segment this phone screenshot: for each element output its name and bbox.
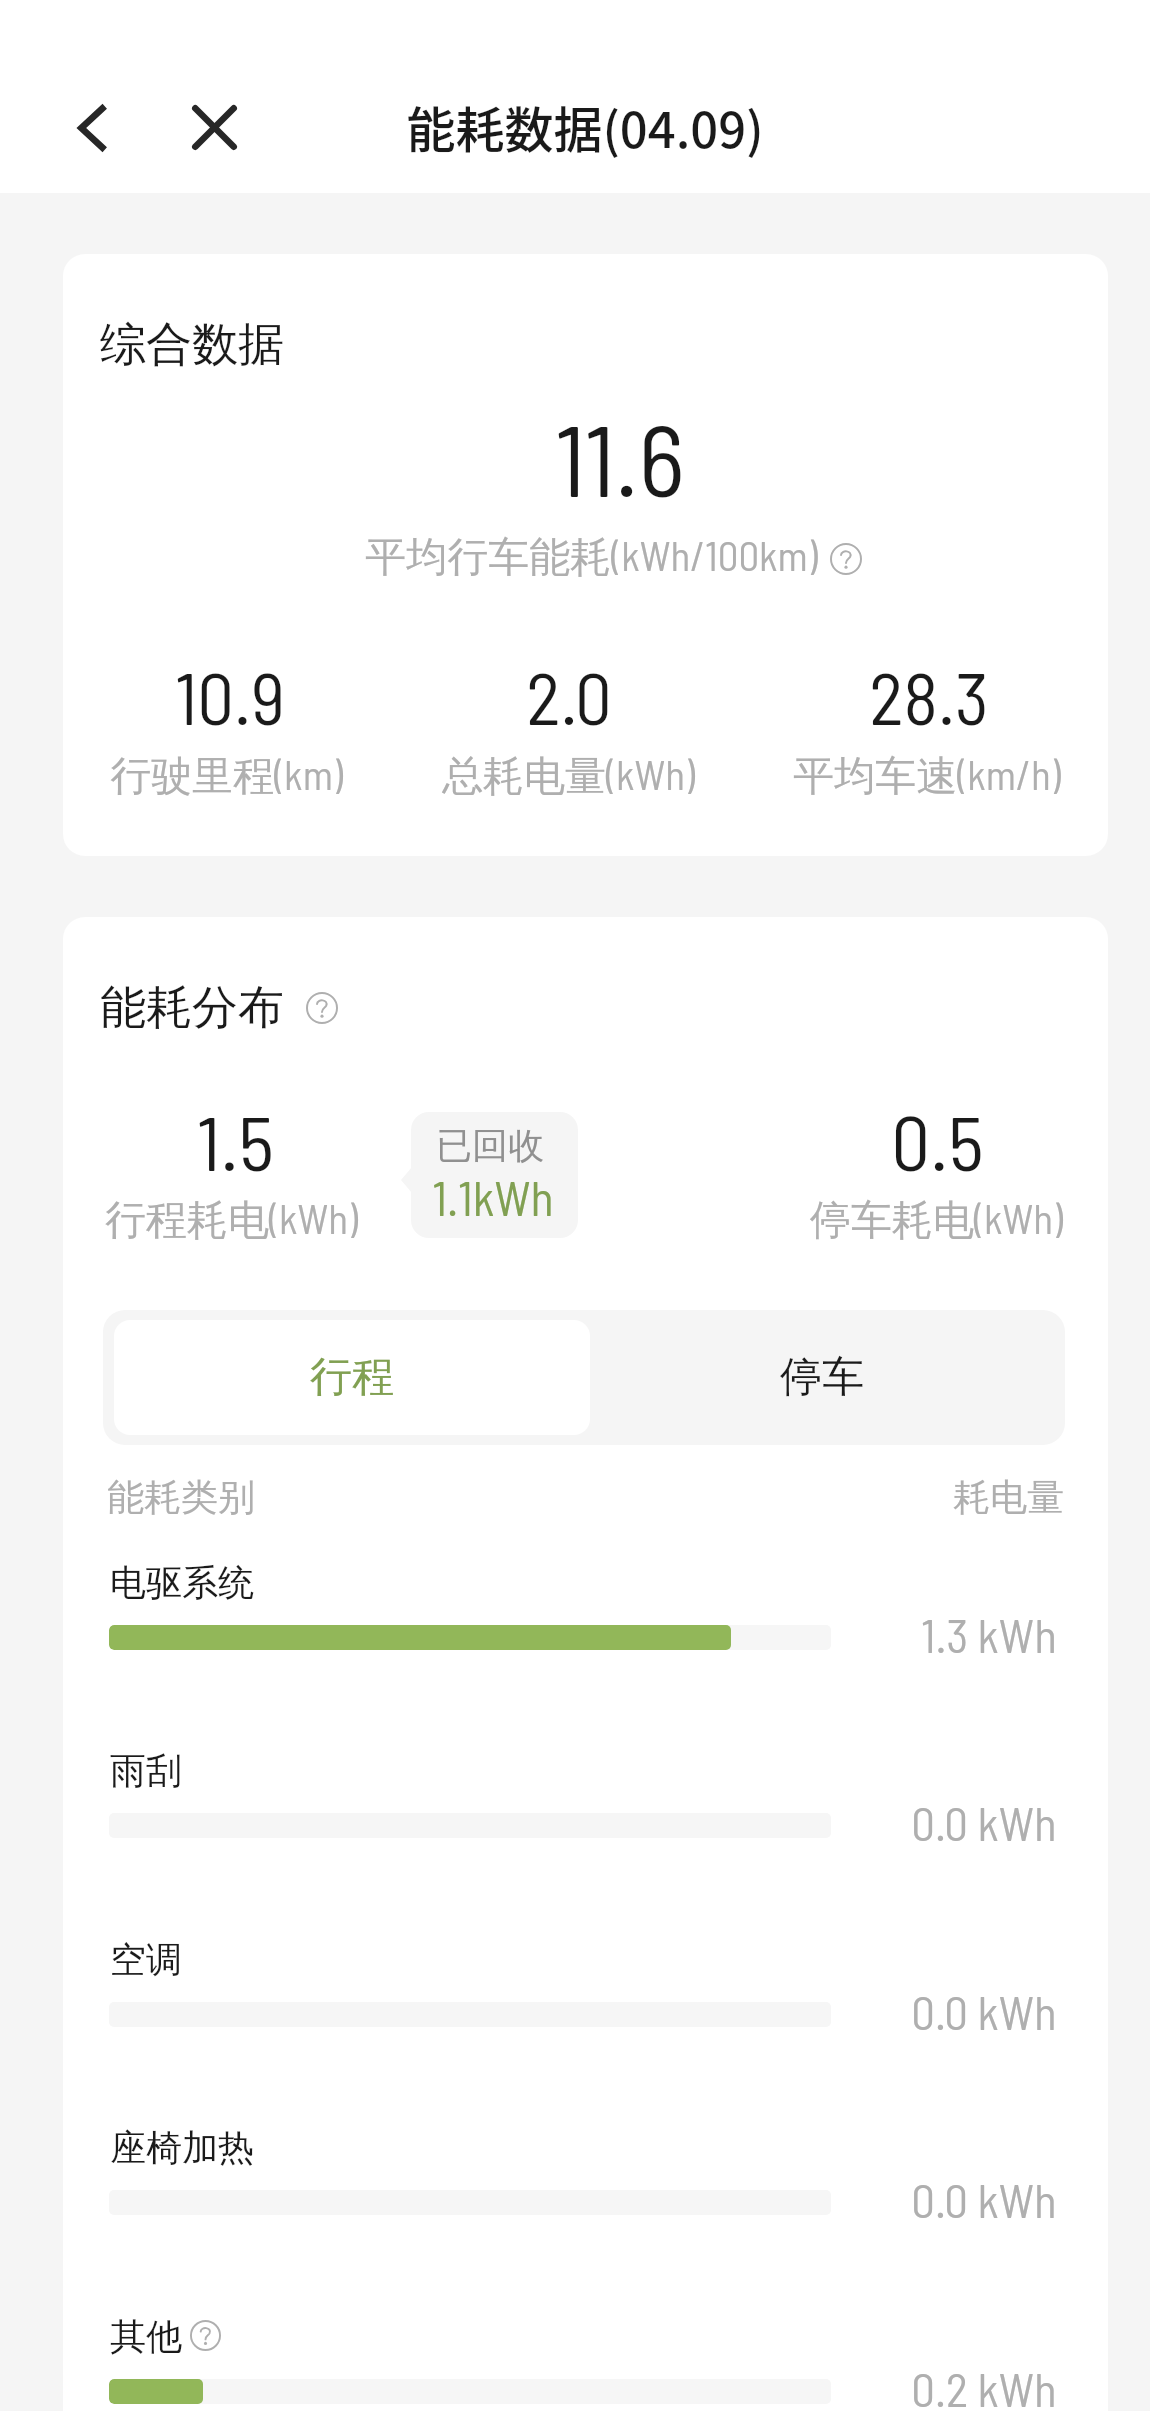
staticText: 综合数据	[100, 316, 284, 374]
staticText: 空调	[110, 1937, 182, 1982]
staticText: 0.0 kWh	[911, 2171, 1057, 2227]
staticText: 平均行车能耗(kWh/100km)	[365, 530, 818, 583]
button[interactable]: Back	[51, 86, 135, 170]
staticText: 总耗电量(kWh)	[442, 749, 695, 802]
staticText: 行程耗电(kWh)	[105, 1193, 358, 1246]
staticText: 1.1kWh	[432, 1168, 554, 1226]
staticText: 行程	[310, 1351, 394, 1404]
staticText: 10.9	[175, 652, 285, 740]
staticText: 停车	[780, 1351, 864, 1404]
staticText: 能耗分布	[100, 979, 284, 1037]
staticText: 已回收	[436, 1123, 544, 1168]
button[interactable]: 已回收	[411, 1112, 578, 1238]
staticText: 电驱系统	[110, 1560, 254, 1605]
staticText: 1.5	[197, 1094, 274, 1186]
staticText: 2.0	[526, 652, 612, 740]
staticText: 0.0 kWh	[911, 1983, 1057, 2039]
button[interactable]: About average driving consumption	[830, 543, 862, 575]
staticText: 雨刮	[110, 1748, 182, 1793]
staticText: 0.0 kWh	[911, 1794, 1057, 1850]
staticText: 0.2 kWh	[911, 2360, 1057, 2411]
staticText: 耗电量	[953, 1474, 1064, 1521]
staticText: 28.3	[869, 652, 989, 740]
staticText: 行驶里程(km)	[110, 749, 343, 802]
staticText: 1.3 kWh	[921, 1606, 1057, 1662]
button[interactable]: 行程	[114, 1320, 590, 1435]
button[interactable]: 停车	[590, 1320, 1054, 1435]
staticText: 其他	[110, 2314, 182, 2359]
staticText: 能耗数据(04.09)	[406, 91, 764, 162]
button[interactable]: About energy distribution	[306, 992, 338, 1024]
staticText: 0.5	[891, 1094, 984, 1186]
staticText: 11.6	[555, 397, 685, 517]
staticText: 停车耗电(kWh)	[810, 1193, 1063, 1246]
staticText: 平均车速(km/h)	[793, 749, 1061, 802]
button[interactable]: About other consumption	[190, 2320, 221, 2351]
staticText: 能耗类别	[107, 1474, 255, 1521]
staticText: 座椅加热	[110, 2125, 254, 2170]
button[interactable]: Close	[172, 85, 256, 169]
